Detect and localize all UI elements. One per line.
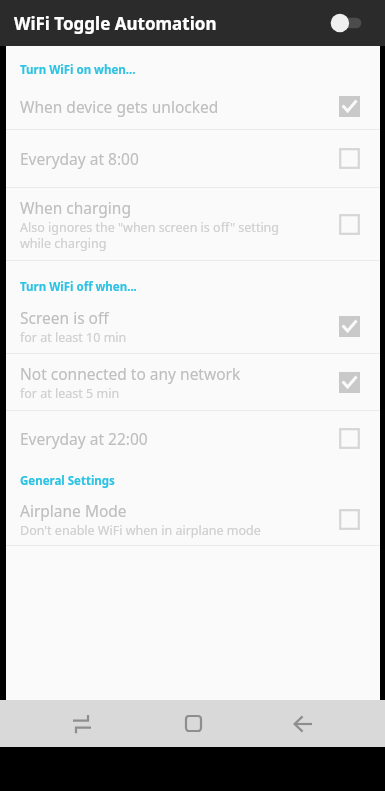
staticText: Turn WiFi on when...	[20, 62, 136, 78]
staticText: Not connected to any network	[20, 363, 241, 384]
button[interactable]: Home	[165, 700, 221, 747]
staticText: Screen is off	[20, 307, 109, 328]
staticText: Airplane Mode	[20, 500, 127, 521]
button[interactable]: When device gets unlocked	[6, 84, 380, 129]
staticText: When device gets unlocked	[20, 96, 219, 117]
staticText: General Settings	[20, 473, 115, 489]
staticText: Also ignores the "when screen is off" se…	[20, 219, 280, 251]
button[interactable]: Everyday at 8:00	[6, 130, 380, 187]
staticText: When charging	[20, 197, 131, 218]
staticText: Don't enable WiFi when in airplane mode	[20, 522, 261, 539]
button[interactable]: Airplane Mode	[6, 493, 380, 545]
staticText: Everyday at 8:00	[20, 148, 139, 169]
staticText: for at least 10 min	[20, 329, 127, 346]
staticText: Everyday at 22:00	[20, 428, 148, 449]
staticText: WiFi Toggle Automation	[14, 12, 217, 35]
button[interactable]: Enable automation	[330, 12, 368, 34]
button[interactable]: Not connected to any network	[6, 354, 380, 410]
staticText: for at least 5 min	[20, 385, 120, 402]
button[interactable]: Recent apps	[54, 700, 110, 747]
button[interactable]: Everyday at 22:00	[6, 411, 380, 465]
button[interactable]: Screen is off	[6, 299, 380, 353]
staticText: Turn WiFi off when...	[20, 279, 137, 295]
button[interactable]: When charging	[6, 188, 380, 260]
button[interactable]: Back	[275, 700, 331, 747]
